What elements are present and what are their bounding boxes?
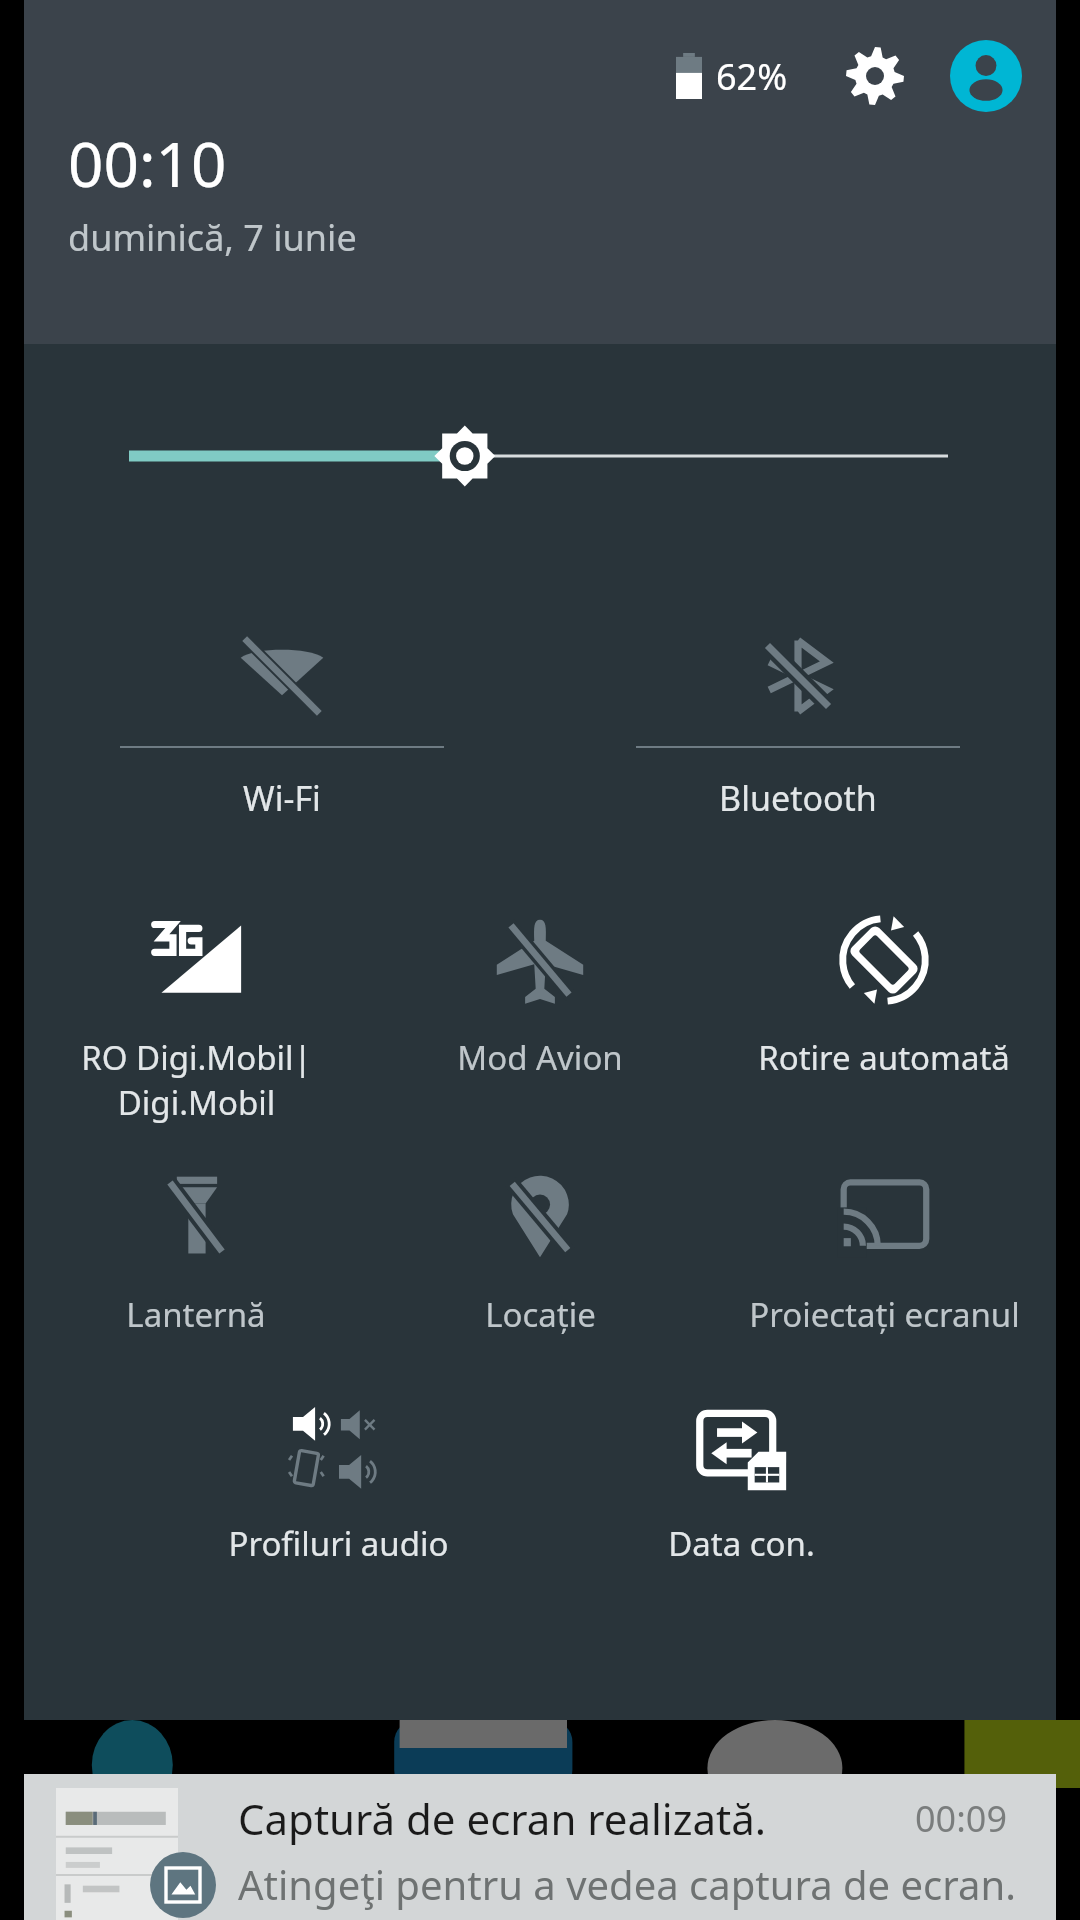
staticText: 62%	[716, 52, 788, 101]
staticText: Data con.	[668, 1521, 815, 1566]
button[interactable]: Brightness	[24, 366, 1056, 546]
button[interactable]: Locație	[368, 1152, 712, 1337]
button[interactable]: Profiluri audio	[137, 1381, 540, 1566]
button[interactable]: Wi-Fi	[24, 606, 540, 821]
staticText: Rotire automată	[758, 1035, 1010, 1080]
button[interactable]: Settings	[840, 41, 910, 111]
button[interactable]: Data con.	[540, 1381, 943, 1566]
staticText: Mod Avion	[457, 1035, 623, 1080]
button[interactable]: Mod Avion	[368, 895, 712, 1080]
button[interactable]: User profile	[950, 40, 1022, 112]
staticText: Locație	[485, 1292, 596, 1337]
staticText: RO Digi.Mobil| Digi.Mobil	[81, 1035, 312, 1124]
staticText: Lanternă	[126, 1292, 266, 1337]
button[interactable]: Bluetooth	[540, 606, 1056, 821]
staticText: Wi-Fi	[243, 775, 321, 821]
staticText: 00:09	[915, 1794, 1008, 1843]
button[interactable]: Proiectați ecranul	[712, 1152, 1056, 1337]
staticText: Atingeţi pentru a vedea captura de ecran…	[238, 1857, 1016, 1911]
staticText: Profiluri audio	[228, 1521, 449, 1566]
staticText: Proiectați ecranul	[749, 1292, 1020, 1337]
staticText: Captură de ecran realizată.	[238, 1790, 766, 1847]
button[interactable]: Lanternă	[24, 1152, 368, 1337]
button[interactable]: Rotire automată	[712, 895, 1056, 1080]
staticText: duminică, 7 iunie	[68, 213, 357, 262]
staticText: 00:10	[68, 121, 227, 205]
staticText: Bluetooth	[719, 775, 877, 821]
button[interactable]: RO Digi.Mobil| Digi.Mobil	[24, 895, 368, 1124]
button[interactable]: Captură de ecran realizată.	[24, 1774, 1056, 1920]
